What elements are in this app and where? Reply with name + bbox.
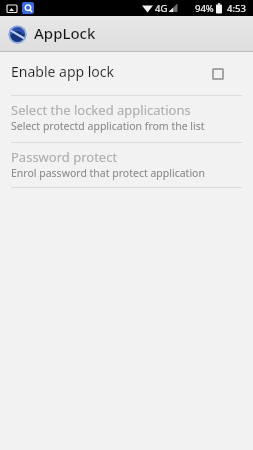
staticText: 4G — [155, 2, 168, 15]
staticText: Select protectd application from the lis… — [11, 119, 205, 133]
staticText: Enable app lock — [11, 62, 115, 81]
staticText: Enrol password that protect application — [11, 166, 205, 180]
staticText: AppLock — [34, 23, 96, 43]
staticText: 94% — [195, 2, 214, 15]
staticText: Select the locked applications — [11, 101, 191, 119]
staticText: 4:53 — [227, 2, 246, 15]
staticText: Password protect — [11, 148, 118, 166]
